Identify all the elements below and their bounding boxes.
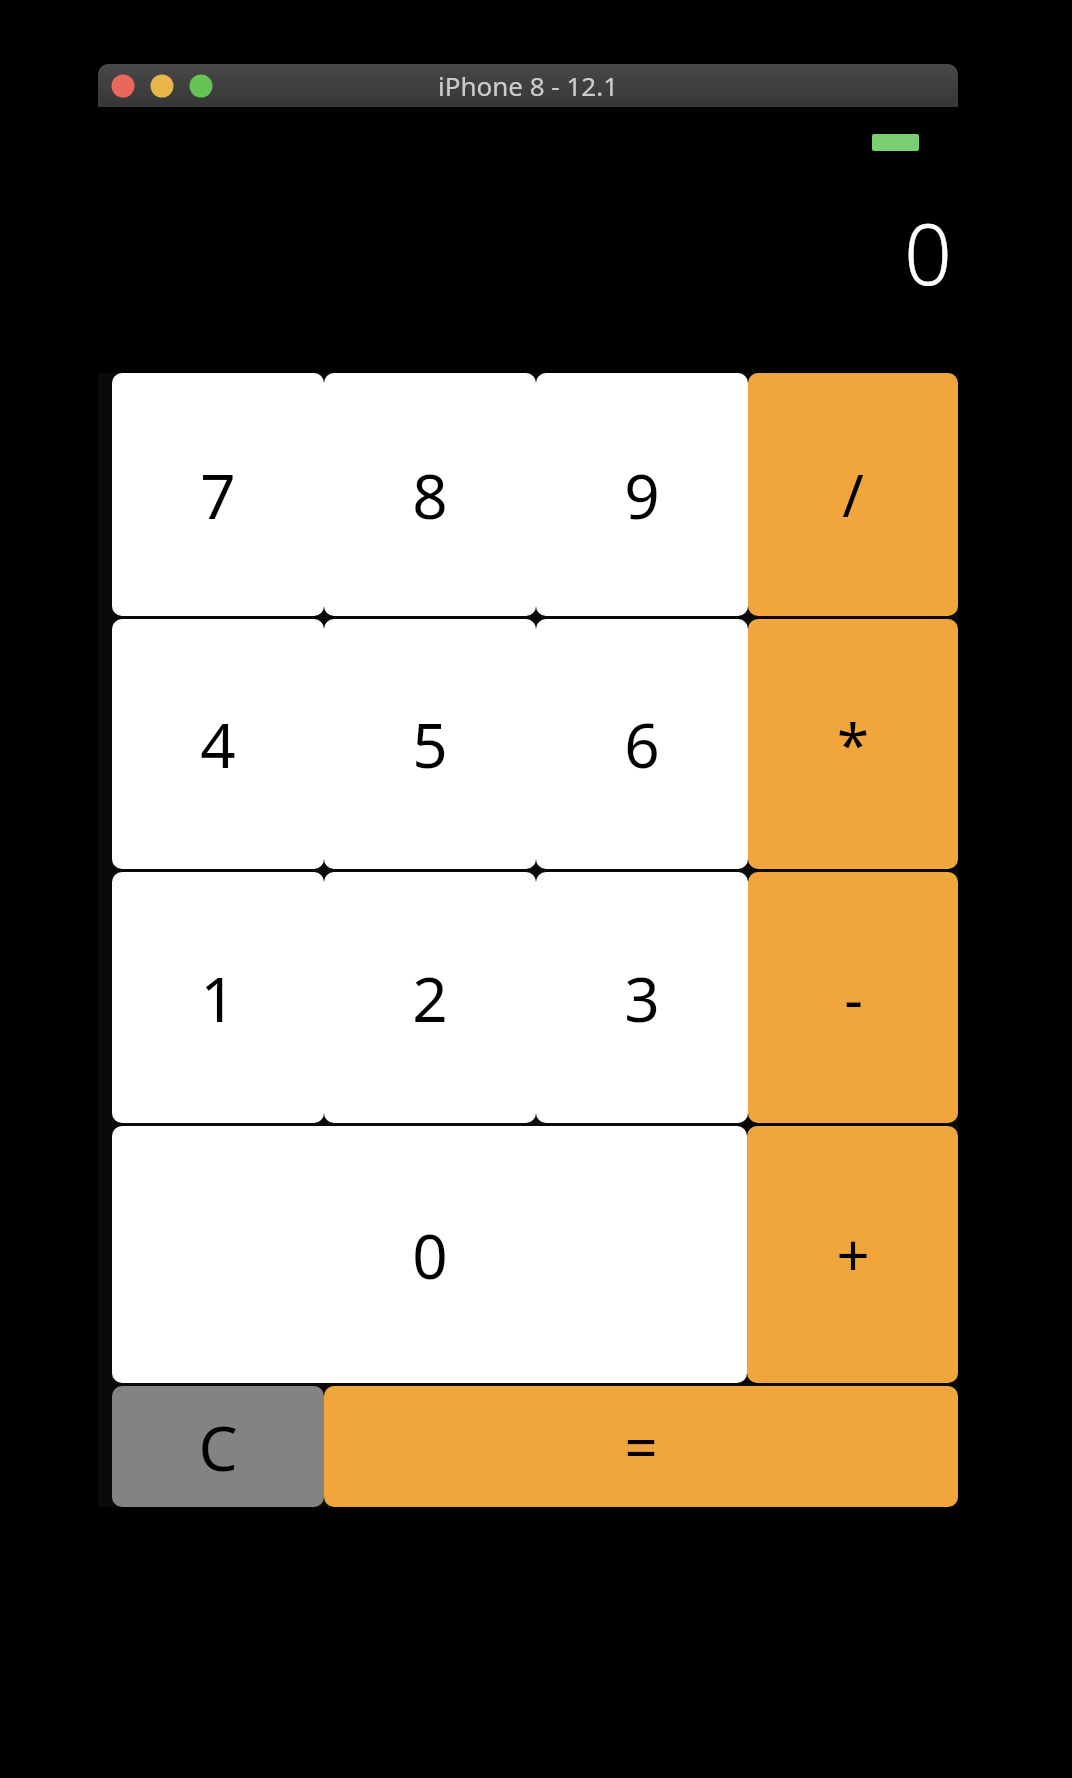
staticText: 7 <box>200 453 236 537</box>
staticText: 6 <box>624 702 660 786</box>
staticText: + <box>836 1215 870 1294</box>
staticText: - <box>844 958 863 1037</box>
staticText: 4 <box>200 702 236 786</box>
staticText: 5 <box>412 702 448 786</box>
button[interactable]: * <box>748 619 958 869</box>
button[interactable]: + <box>747 1126 958 1383</box>
button[interactable]: 1 <box>112 872 324 1123</box>
staticText: C <box>198 1405 238 1489</box>
staticText: iPhone 8 - 12.1 <box>438 68 619 103</box>
staticText: 2 <box>412 956 448 1040</box>
button[interactable]: 2 <box>324 872 536 1123</box>
staticText: * <box>837 705 869 784</box>
button[interactable]: - <box>748 872 958 1123</box>
staticText: 3 <box>624 956 660 1040</box>
button[interactable]: 0 <box>112 1126 747 1383</box>
staticText: 8 <box>412 453 448 537</box>
button[interactable]: 8 <box>324 373 536 616</box>
button[interactable]: C <box>112 1386 324 1507</box>
button[interactable]: = <box>324 1386 958 1507</box>
other: Window controls <box>110 72 220 100</box>
staticText: 0 <box>904 195 952 309</box>
staticText: / <box>842 455 864 534</box>
staticText: 1 <box>200 956 236 1040</box>
button[interactable]: 4 <box>112 619 324 869</box>
staticText: = <box>624 1407 658 1486</box>
button[interactable]: 6 <box>536 619 748 869</box>
button[interactable]: 7 <box>112 373 324 616</box>
staticText: 9 <box>624 453 660 537</box>
button[interactable]: 9 <box>536 373 748 616</box>
button[interactable]: 5 <box>324 619 536 869</box>
staticText: 0 <box>412 1213 448 1297</box>
button[interactable]: 3 <box>536 872 748 1123</box>
button[interactable]: / <box>748 373 958 616</box>
